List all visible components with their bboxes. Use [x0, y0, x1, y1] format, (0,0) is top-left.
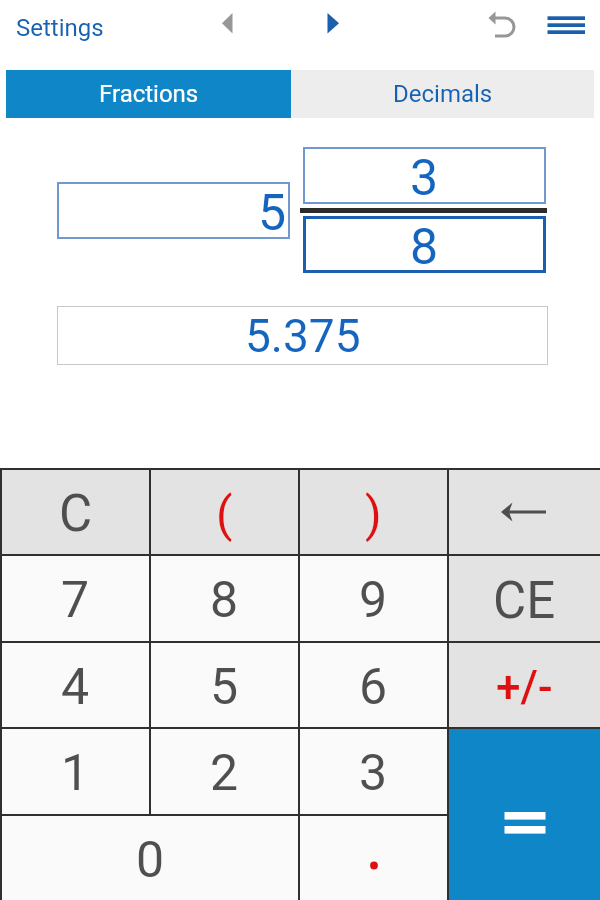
staticText: Decimals	[393, 80, 493, 108]
staticText: 8	[410, 218, 439, 275]
staticText: 3	[410, 149, 439, 206]
button[interactable]: Decimals	[291, 70, 594, 118]
staticText: C	[59, 484, 93, 544]
button[interactable]: +/-	[449, 643, 600, 727]
button[interactable]	[449, 729, 600, 900]
staticText: 3	[359, 744, 388, 803]
button[interactable]: C	[2, 470, 149, 554]
staticText: )	[365, 486, 382, 542]
button[interactable]	[300, 816, 447, 900]
button[interactable]: 2	[151, 729, 298, 814]
staticText: +/-	[496, 661, 553, 713]
staticText: 9	[359, 571, 388, 630]
staticText: 1	[61, 744, 90, 803]
button[interactable]: 3	[303, 147, 546, 204]
staticText: (	[216, 486, 233, 542]
staticText: 5.375	[245, 309, 361, 363]
button[interactable]	[322, 8, 354, 40]
staticText: 6	[359, 658, 388, 717]
button[interactable]: )	[300, 470, 447, 554]
button[interactable]: (	[151, 470, 298, 554]
button[interactable]: 6	[300, 643, 447, 727]
button[interactable]: 8	[151, 556, 298, 641]
button[interactable]: CE	[449, 556, 600, 641]
button[interactable]: 7	[2, 556, 149, 641]
staticText: 8	[210, 571, 239, 630]
button[interactable]: 0	[2, 816, 298, 900]
staticText: 2	[210, 744, 239, 803]
staticText: 4	[61, 658, 90, 717]
staticText: Settings	[16, 14, 104, 42]
button[interactable]	[484, 8, 516, 40]
button[interactable]: Fractions	[6, 70, 291, 118]
staticText: 0	[136, 831, 165, 890]
button[interactable]: 3	[300, 729, 447, 814]
button[interactable]: 8	[303, 216, 546, 273]
button[interactable]: Settings	[10, 8, 120, 48]
staticText: 7	[61, 571, 90, 630]
button[interactable]: 4	[2, 643, 149, 727]
button[interactable]: 5	[151, 643, 298, 727]
staticText: CE	[493, 571, 556, 631]
button[interactable]	[540, 6, 592, 42]
staticText: 5	[210, 658, 239, 717]
button[interactable]: 9	[300, 556, 447, 641]
staticText: 5	[258, 184, 287, 241]
button[interactable]: 1	[2, 729, 149, 814]
button[interactable]	[449, 470, 600, 554]
button[interactable]	[212, 8, 244, 40]
staticText: Fractions	[99, 80, 199, 108]
button[interactable]: 5	[57, 182, 290, 239]
